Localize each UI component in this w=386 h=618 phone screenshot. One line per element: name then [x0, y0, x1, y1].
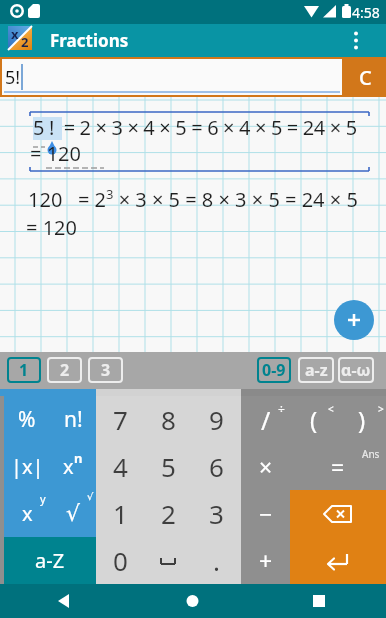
- staticText: = 120: [30, 140, 81, 167]
- staticText: x: [63, 453, 74, 480]
- staticText: .: [213, 543, 220, 578]
- button[interactable]: x: [50, 443, 96, 490]
- button[interactable]: (: [290, 396, 338, 443]
- button[interactable]: x: [4, 490, 50, 537]
- staticText: ÷: [278, 401, 285, 417]
- staticText: √: [66, 501, 81, 527]
- button[interactable]: 6: [192, 443, 241, 490]
- button[interactable]: ): [338, 396, 386, 443]
- button[interactable]: 4: [96, 443, 144, 490]
- button[interactable]: [290, 490, 386, 537]
- button[interactable]: |x|: [4, 443, 50, 490]
- button[interactable]: 3: [192, 490, 241, 537]
- button[interactable]: C: [344, 57, 386, 97]
- button[interactable]: [0, 584, 128, 618]
- button[interactable]: 2: [47, 357, 82, 383]
- staticText: n: [74, 449, 83, 467]
- button[interactable]: −: [241, 490, 290, 537]
- button[interactable]: 5!: [0, 57, 344, 97]
- button[interactable]: a-z: [298, 357, 334, 383]
- staticText: 1: [19, 359, 29, 381]
- button[interactable]: a-Z: [4, 537, 96, 584]
- button[interactable]: +: [241, 537, 290, 584]
- staticText: x: [11, 25, 19, 43]
- staticText: <: [328, 402, 334, 416]
- button[interactable]: 1: [7, 357, 41, 383]
- button[interactable]: ×: [241, 443, 290, 490]
- button[interactable]: n!: [50, 396, 96, 443]
- staticText: y: [40, 491, 46, 506]
- staticText: −: [259, 498, 273, 529]
- button[interactable]: 9: [192, 396, 241, 443]
- staticText: ×: [259, 451, 273, 482]
- staticText: 5: [161, 449, 176, 484]
- staticText: 7: [113, 402, 128, 437]
- staticText: >: [378, 402, 384, 416]
- staticText: 2: [161, 496, 176, 531]
- staticText: +: [259, 545, 273, 576]
- staticText: 0-9: [262, 359, 286, 381]
- staticText: 4: [113, 449, 128, 484]
- staticText: 0: [113, 543, 128, 578]
- button[interactable]: [144, 537, 192, 584]
- button[interactable]: [290, 537, 386, 584]
- staticText: Fractions: [50, 29, 129, 52]
- button[interactable]: 0: [96, 537, 144, 584]
- staticText: = 120: [26, 214, 77, 241]
- staticText: /: [261, 403, 271, 437]
- button[interactable]: 2: [144, 490, 192, 537]
- staticText: ): [358, 403, 366, 436]
- staticText: 8: [161, 402, 176, 437]
- staticText: 4:58: [352, 3, 380, 22]
- button[interactable]: √: [50, 490, 96, 537]
- button[interactable]: 1: [96, 490, 144, 537]
- button[interactable]: [128, 584, 257, 618]
- staticText: 9: [209, 402, 224, 437]
- button[interactable]: 0-9: [257, 357, 291, 383]
- button[interactable]: [342, 24, 386, 57]
- staticText: 3: [101, 359, 111, 381]
- staticText: n!: [64, 405, 83, 434]
- staticText: a-z: [305, 359, 328, 381]
- staticText: %: [18, 405, 36, 434]
- staticText: 2: [21, 33, 29, 51]
- button[interactable]: =: [290, 443, 386, 490]
- button[interactable]: .: [192, 537, 241, 584]
- staticText: x: [22, 500, 33, 527]
- staticText: 120 = 23 × 3 × 5 = 8 × 3 × 5 = 24 × 5: [28, 185, 358, 212]
- staticText: |x|: [11, 453, 44, 480]
- button[interactable]: 7: [96, 396, 144, 443]
- staticText: Ans: [362, 447, 380, 461]
- staticText: √: [87, 491, 94, 503]
- button[interactable]: 8: [144, 396, 192, 443]
- staticText: 1: [113, 496, 128, 531]
- button[interactable]: [334, 300, 374, 340]
- staticText: 5 ! = 2 × 3 × 4 × 5 = 6 × 4 × 5 = 24 × 5: [33, 114, 357, 141]
- staticText: (: [310, 403, 318, 436]
- staticText: 2: [60, 359, 70, 381]
- staticText: 3: [209, 496, 224, 531]
- staticText: a-Z: [35, 547, 65, 574]
- staticText: 6: [209, 449, 224, 484]
- staticText: =: [331, 451, 345, 482]
- staticText: α-ω: [341, 359, 371, 381]
- staticText: 5!: [5, 65, 21, 90]
- button[interactable]: 5: [144, 443, 192, 490]
- button[interactable]: %: [4, 396, 50, 443]
- button[interactable]: /: [241, 396, 290, 443]
- button[interactable]: α-ω: [338, 357, 374, 383]
- button[interactable]: 3: [88, 357, 123, 383]
- staticText: C: [359, 64, 372, 91]
- button[interactable]: [257, 584, 386, 618]
